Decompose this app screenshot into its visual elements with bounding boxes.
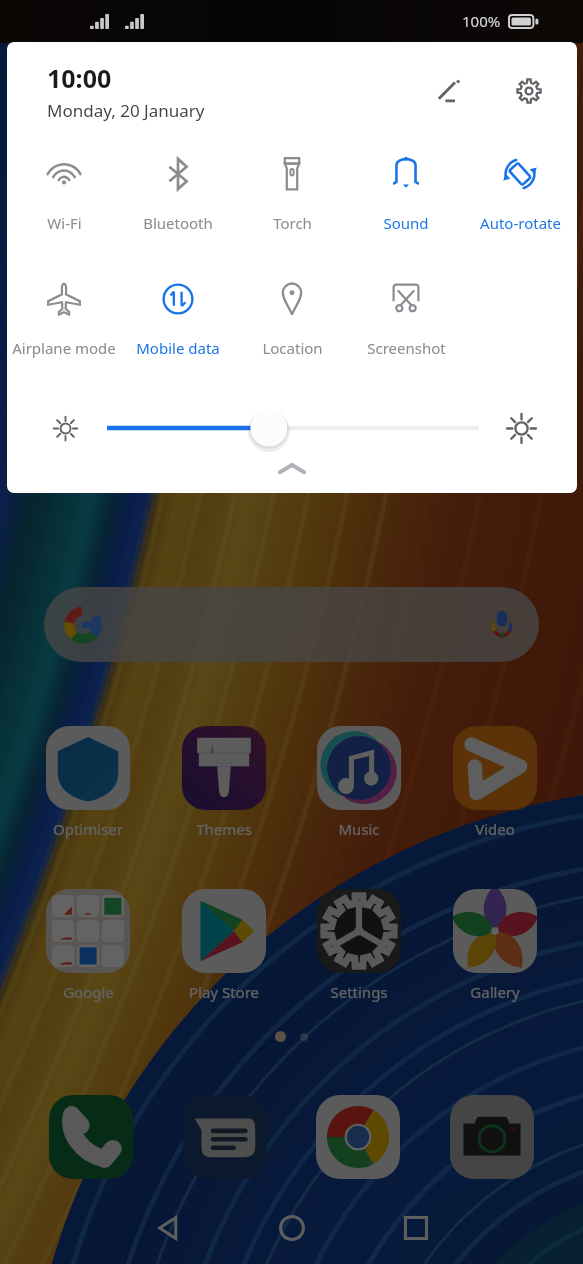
button[interactable]: Auto-rotate — [463, 156, 577, 233]
button[interactable]: Chrome — [316, 1095, 400, 1179]
button[interactable]: Music — [311, 726, 407, 839]
button[interactable]: Airplane mode — [7, 281, 121, 358]
button[interactable]: Brightness — [107, 406, 479, 450]
staticText: Wi-Fi — [47, 213, 82, 233]
staticText: Sound — [383, 213, 429, 233]
staticText: Google — [63, 982, 114, 1002]
button[interactable]: Google — [40, 889, 136, 1002]
staticText: Monday, 20 January — [47, 99, 205, 122]
staticText: Torch — [273, 213, 312, 233]
button[interactable]: Screenshot — [349, 281, 463, 358]
button[interactable]: Recents — [384, 1196, 448, 1260]
button[interactable]: Edit quick settings — [425, 67, 473, 115]
button[interactable]: Back — [136, 1196, 200, 1260]
staticText: Optimiser — [53, 819, 123, 839]
button[interactable]: Optimiser — [40, 726, 136, 839]
button[interactable]: Phone — [49, 1095, 133, 1179]
button[interactable]: Play Store — [176, 889, 272, 1002]
staticText: 100% — [462, 11, 501, 31]
button[interactable]: Settings — [311, 889, 407, 1002]
staticText: Mobile data — [136, 338, 220, 358]
staticText: Gallery — [470, 982, 520, 1002]
button[interactable]: Sound — [349, 156, 463, 233]
staticText: Music — [338, 819, 380, 839]
staticText: Bluetooth — [143, 213, 213, 233]
staticText: Screenshot — [367, 338, 446, 358]
button[interactable]: Settings — [505, 67, 553, 115]
staticText: Airplane mode — [12, 338, 116, 358]
staticText: 10:00 — [47, 61, 112, 95]
button[interactable]: Torch — [235, 156, 349, 233]
button[interactable]: Camera — [450, 1095, 534, 1179]
button[interactable]: Mobile data — [121, 281, 235, 358]
button[interactable]: Location — [235, 281, 349, 358]
staticText: Settings — [330, 982, 388, 1002]
button[interactable]: Bluetooth — [121, 156, 235, 233]
staticText: Video — [475, 819, 515, 839]
button[interactable]: Themes — [176, 726, 272, 839]
staticText: Play Store — [189, 982, 259, 1002]
button[interactable]: Messages — [183, 1095, 267, 1179]
button[interactable]: Google search — [44, 587, 539, 662]
button[interactable]: Home — [260, 1196, 324, 1260]
staticText: Themes — [196, 819, 252, 839]
button[interactable]: Gallery — [447, 889, 543, 1002]
button[interactable]: Video — [447, 726, 543, 839]
staticText: Auto-rotate — [480, 213, 561, 233]
button[interactable]: Wi-Fi — [7, 156, 121, 233]
staticText: Location — [262, 338, 323, 358]
